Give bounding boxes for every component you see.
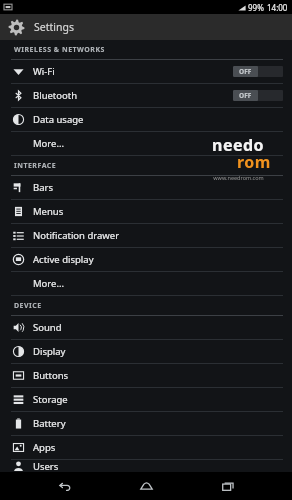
button[interactable]: OFF [233,66,283,77]
staticText: Active display [33,253,94,266]
staticText: Wi-Fi [33,65,55,78]
button[interactable]: Sound [0,316,292,340]
button[interactable]: More... [0,132,292,156]
button[interactable]: Buttons [0,364,292,388]
button[interactable]: Data usage [0,108,292,132]
staticText: www.needrom.com [213,174,264,181]
staticText: Bluetooth [33,89,78,102]
staticText: OFF [239,67,252,76]
staticText: 99% [248,2,264,13]
button[interactable]: Storage [0,388,292,412]
staticText: Notification drawer [33,229,120,242]
staticText: DEVICE [14,301,42,311]
button[interactable]: Settings [0,14,292,40]
button[interactable]: More... [0,272,292,296]
staticText: Battery [33,417,66,430]
staticText: Sound [33,321,62,334]
button[interactable]: Home [128,472,164,500]
staticText: 14:00 [267,2,288,13]
staticText: OFF [239,91,252,100]
button[interactable]: Apps [0,436,292,460]
staticText: rom [237,151,271,173]
button[interactable]: Wi-Fi [0,60,292,84]
staticText: Display [33,345,66,358]
button[interactable]: Bars [0,176,292,200]
button[interactable]: Menus [0,200,292,224]
staticText: Apps [33,441,56,454]
button[interactable]: Battery [0,412,292,436]
staticText: More... [33,137,65,150]
staticText: Users [33,460,59,472]
button[interactable]: Back [46,472,82,500]
staticText: Settings [34,20,74,34]
staticText: INTERFACE [14,161,57,171]
staticText: Bars [33,181,53,194]
staticText: Data usage [33,113,84,126]
staticText: Storage [33,393,68,406]
button[interactable]: Active display [0,248,292,272]
button[interactable]: Display [0,340,292,364]
button[interactable]: Bluetooth [0,84,292,108]
button[interactable]: OFF [233,90,283,101]
staticText: Menus [33,205,64,218]
button[interactable]: Notification drawer [0,224,292,248]
button[interactable]: Recent apps [210,472,246,500]
staticText: WIRELESS & NETWORKS [14,45,105,55]
staticText: Buttons [33,369,69,382]
button[interactable]: Users [0,460,292,472]
staticText: More... [33,277,65,290]
staticText: needo [212,134,265,156]
